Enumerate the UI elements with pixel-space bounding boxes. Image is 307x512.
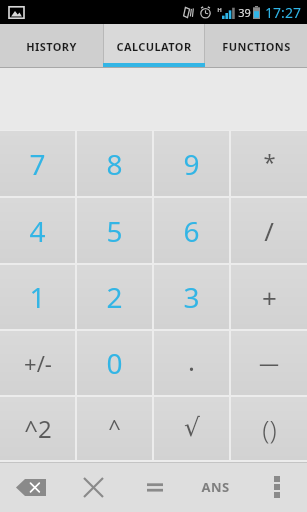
button[interactable]: 6	[154, 198, 229, 263]
button[interactable]: +	[231, 265, 307, 329]
button[interactable]: Clear	[62, 462, 124, 512]
staticText: 5	[106, 212, 123, 250]
staticText: 2	[106, 278, 123, 316]
staticText: 8	[106, 145, 123, 183]
staticText: 0	[106, 344, 123, 382]
staticText: ^2	[24, 412, 52, 445]
staticText: .	[188, 343, 195, 378]
button[interactable]: HISTORY	[0, 24, 103, 68]
button[interactable]: 9	[154, 131, 229, 196]
button[interactable]: 8	[77, 131, 152, 196]
button[interactable]: 4	[0, 198, 75, 263]
staticText: CALCULATOR	[116, 39, 192, 54]
staticText: ^	[108, 412, 121, 442]
staticText: √	[184, 413, 200, 442]
staticText: ()	[262, 411, 277, 446]
staticText: /	[264, 213, 274, 248]
button[interactable]: Equals	[124, 462, 185, 512]
staticText: 6	[183, 212, 200, 250]
button[interactable]: ^	[77, 397, 152, 460]
button[interactable]: 7	[0, 131, 75, 196]
button[interactable]: +/-	[0, 331, 75, 395]
button[interactable]: —	[231, 331, 307, 395]
button[interactable]: 2	[77, 265, 152, 329]
button[interactable]: CALCULATOR	[103, 24, 205, 68]
staticText: —	[259, 350, 279, 377]
button[interactable]: 5	[77, 198, 152, 263]
button[interactable]: √	[154, 397, 229, 460]
button[interactable]: 0	[77, 331, 152, 395]
staticText: 7	[29, 145, 46, 183]
button[interactable]: .	[154, 331, 229, 395]
button[interactable]: ANS	[185, 462, 246, 512]
staticText: 1	[29, 278, 46, 316]
button[interactable]: Backspace	[0, 462, 62, 512]
button[interactable]: 1	[0, 265, 75, 329]
staticText: HISTORY	[26, 39, 77, 54]
staticText: 3	[183, 278, 200, 316]
staticText: ANS	[201, 478, 230, 496]
button[interactable]: ()	[231, 397, 307, 460]
button[interactable]: *	[231, 131, 307, 196]
staticText: 9	[183, 145, 200, 183]
button[interactable]: 3	[154, 265, 229, 329]
staticText: +/-	[24, 348, 52, 378]
staticText: 17:27	[265, 3, 301, 22]
staticText: +	[262, 280, 277, 315]
staticText: FUNCTIONS	[222, 39, 291, 54]
button[interactable]: FUNCTIONS	[205, 24, 307, 68]
staticText: H	[217, 6, 222, 14]
button[interactable]: /	[231, 198, 307, 263]
staticText: 4	[29, 212, 46, 250]
button[interactable]: ^2	[0, 397, 75, 460]
staticText: 39	[238, 5, 251, 20]
button[interactable]: More options	[246, 462, 307, 512]
staticText: *	[263, 146, 276, 176]
